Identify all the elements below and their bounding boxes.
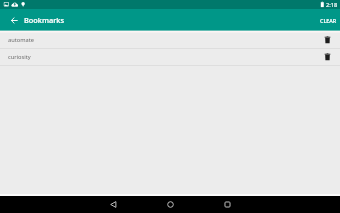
staticText: 2:18: [326, 1, 338, 9]
staticText: automate: [8, 36, 34, 44]
button[interactable]: Home: [162, 196, 179, 213]
button[interactable]: CLEAR: [315, 9, 340, 31]
button[interactable]: Navigate up: [3, 9, 25, 31]
staticText: CLEAR: [320, 17, 337, 24]
button[interactable]: Recent apps: [219, 196, 236, 213]
button[interactable]: Delete bookmark: [314, 32, 340, 48]
button[interactable]: Back: [105, 196, 122, 213]
button[interactable]: automate: [0, 32, 340, 49]
staticText: curiosity: [8, 53, 31, 61]
button[interactable]: Delete bookmark: [314, 49, 340, 65]
button[interactable]: curiosity: [0, 49, 340, 66]
staticText: Bookmarks: [24, 15, 65, 25]
